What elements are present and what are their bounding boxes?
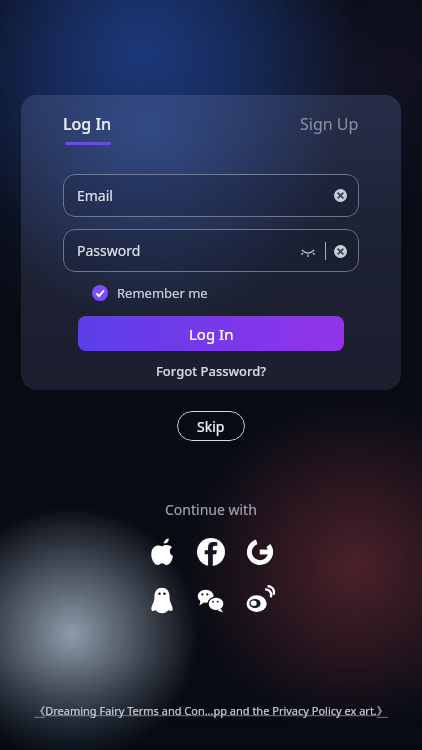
- button[interactable]: 《Dreaming Fairy Terms and Con…pp and the…: [10, 703, 412, 718]
- staticText: Continue with: [165, 500, 257, 519]
- button[interactable]: Toggle password visibility: [299, 242, 317, 260]
- staticText: Skip: [197, 417, 225, 436]
- staticText: Password: [77, 241, 141, 260]
- button[interactable]: Remember me: [92, 284, 208, 302]
- button[interactable]: Sign in with WeChat: [196, 585, 226, 615]
- button[interactable]: Clear Email: [334, 189, 347, 202]
- button[interactable]: Sign in with Facebook: [196, 537, 226, 567]
- button[interactable]: Forgot Password?: [156, 362, 267, 380]
- button[interactable]: Clear Password: [334, 245, 347, 258]
- button[interactable]: Skip: [177, 411, 245, 441]
- button[interactable]: Email: [63, 174, 359, 217]
- button[interactable]: Log In: [63, 113, 112, 145]
- staticText: Log In: [63, 113, 112, 135]
- button[interactable]: Sign Up: [300, 113, 359, 135]
- staticText: Email: [77, 186, 113, 205]
- button[interactable]: Password: [63, 229, 359, 272]
- button[interactable]: Sign in with Apple: [147, 537, 177, 567]
- button[interactable]: Sign in with Google: [245, 537, 275, 567]
- button[interactable]: Sign in with Weibo: [245, 585, 275, 615]
- button[interactable]: Log In: [78, 316, 344, 351]
- staticText: Remember me: [117, 284, 208, 302]
- button[interactable]: Sign in with QQ: [147, 585, 177, 615]
- staticText: Log In: [189, 324, 234, 344]
- staticText: 《Dreaming Fairy Terms and Con…pp and the…: [34, 703, 388, 718]
